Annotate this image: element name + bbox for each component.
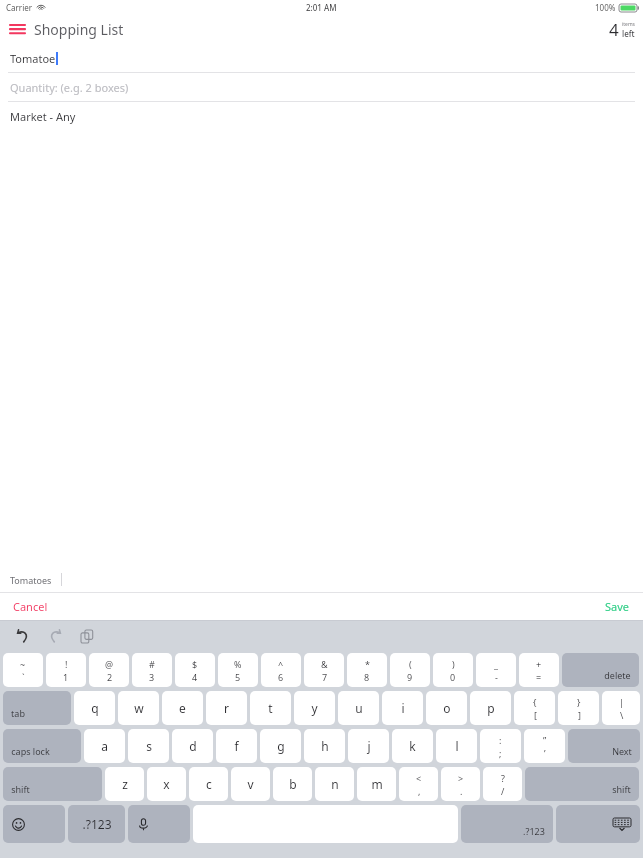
button[interactable]: Cancel bbox=[0, 594, 61, 619]
staticText: 6 bbox=[278, 671, 284, 683]
button[interactable]: h bbox=[304, 729, 345, 763]
button[interactable]: ) bbox=[433, 653, 473, 687]
staticText: x bbox=[163, 776, 170, 792]
button[interactable]: b bbox=[273, 767, 312, 801]
button[interactable]: Hide keyboard bbox=[556, 805, 640, 843]
button[interactable]: k bbox=[392, 729, 433, 763]
staticText: ( bbox=[409, 658, 412, 670]
button[interactable]: : bbox=[480, 729, 521, 763]
button[interactable]: g bbox=[260, 729, 301, 763]
staticText: b bbox=[289, 776, 297, 792]
button[interactable]: x bbox=[147, 767, 186, 801]
button[interactable]: l bbox=[436, 729, 477, 763]
button[interactable]: s bbox=[128, 729, 169, 763]
button[interactable]: .?123 bbox=[461, 805, 553, 843]
staticText: items bbox=[622, 21, 635, 28]
button[interactable]: $ bbox=[175, 653, 215, 687]
button[interactable]: ~ bbox=[3, 653, 43, 687]
button[interactable]: Emoji bbox=[3, 805, 65, 843]
button[interactable]: v bbox=[231, 767, 270, 801]
button[interactable]: ? bbox=[483, 767, 522, 801]
button[interactable]: { bbox=[514, 691, 555, 725]
staticText: v bbox=[247, 776, 254, 792]
staticText: } bbox=[577, 696, 581, 708]
button[interactable]: shift bbox=[525, 767, 639, 801]
button[interactable]: ! bbox=[46, 653, 86, 687]
staticText: ] bbox=[578, 709, 581, 721]
staticText: i bbox=[401, 700, 405, 716]
button[interactable]: Save bbox=[592, 594, 643, 619]
button[interactable]: y bbox=[294, 691, 335, 725]
button[interactable]: ( bbox=[390, 653, 430, 687]
staticText: 3 bbox=[149, 671, 155, 683]
button[interactable]: m bbox=[357, 767, 396, 801]
staticText: = bbox=[536, 671, 542, 683]
button[interactable]: Redo bbox=[42, 623, 68, 649]
staticText: shift bbox=[612, 783, 631, 795]
staticText: ~ bbox=[20, 658, 26, 670]
button[interactable]: u bbox=[338, 691, 379, 725]
button[interactable]: q bbox=[74, 691, 115, 725]
button[interactable]: delete bbox=[562, 653, 639, 687]
button[interactable]: | bbox=[602, 691, 640, 725]
button[interactable]: Undo bbox=[10, 623, 36, 649]
staticText: Quantity: (e.g. 2 boxes) bbox=[10, 80, 129, 95]
button[interactable]: .?123 bbox=[68, 805, 125, 843]
button[interactable]: c bbox=[189, 767, 228, 801]
button[interactable]: w bbox=[118, 691, 159, 725]
staticText: t bbox=[268, 700, 273, 716]
button[interactable]: a bbox=[84, 729, 125, 763]
staticText: ^ bbox=[278, 658, 284, 670]
button[interactable]: Tomatoes bbox=[0, 573, 62, 586]
button[interactable]: n bbox=[315, 767, 354, 801]
button[interactable]: & bbox=[304, 653, 344, 687]
button[interactable]: ” bbox=[524, 729, 565, 763]
staticText: shift bbox=[11, 783, 30, 795]
button[interactable]: Market - Any bbox=[0, 102, 643, 130]
button[interactable]: Dictation bbox=[128, 805, 190, 843]
button[interactable]: r bbox=[206, 691, 247, 725]
button[interactable]: 4 bbox=[609, 18, 643, 41]
staticText: h bbox=[321, 738, 329, 754]
button[interactable]: o bbox=[426, 691, 467, 725]
staticText: + bbox=[536, 658, 542, 670]
button[interactable]: e bbox=[162, 691, 203, 725]
staticText: ; bbox=[499, 747, 502, 759]
staticText: g bbox=[277, 738, 285, 754]
button[interactable]: # bbox=[132, 653, 172, 687]
staticText: .?123 bbox=[523, 825, 545, 837]
staticText: 1 bbox=[63, 671, 69, 683]
button[interactable]: + bbox=[519, 653, 559, 687]
button[interactable]: } bbox=[558, 691, 599, 725]
button[interactable]: Quantity: (e.g. 2 boxes) bbox=[0, 73, 643, 101]
button[interactable]: shift bbox=[3, 767, 102, 801]
button[interactable]: ^ bbox=[261, 653, 301, 687]
button[interactable]: d bbox=[172, 729, 213, 763]
button[interactable]: j bbox=[348, 729, 389, 763]
button[interactable]: @ bbox=[89, 653, 129, 687]
button[interactable]: t bbox=[250, 691, 291, 725]
button[interactable]: % bbox=[218, 653, 258, 687]
staticText: 5 bbox=[235, 671, 241, 683]
staticText: ” bbox=[543, 734, 547, 746]
button[interactable]: Paste bbox=[74, 623, 100, 649]
button[interactable]: Tomatoe bbox=[0, 44, 643, 72]
button[interactable]: z bbox=[105, 767, 144, 801]
staticText: f bbox=[234, 738, 239, 754]
button[interactable]: f bbox=[216, 729, 257, 763]
button[interactable]: tab bbox=[3, 691, 71, 725]
button[interactable]: > bbox=[441, 767, 480, 801]
staticText: u bbox=[355, 700, 363, 716]
button[interactable]: caps lock bbox=[3, 729, 81, 763]
button[interactable]: i bbox=[382, 691, 423, 725]
button[interactable]: p bbox=[470, 691, 511, 725]
button[interactable]: _ bbox=[476, 653, 516, 687]
button[interactable]: * bbox=[347, 653, 387, 687]
button[interactable]: < bbox=[399, 767, 438, 801]
button[interactable]: Next bbox=[568, 729, 640, 763]
staticText: 4 bbox=[192, 671, 198, 683]
button[interactable]: Menu bbox=[0, 16, 134, 43]
staticText: { bbox=[533, 696, 537, 708]
staticText: y bbox=[311, 700, 318, 716]
